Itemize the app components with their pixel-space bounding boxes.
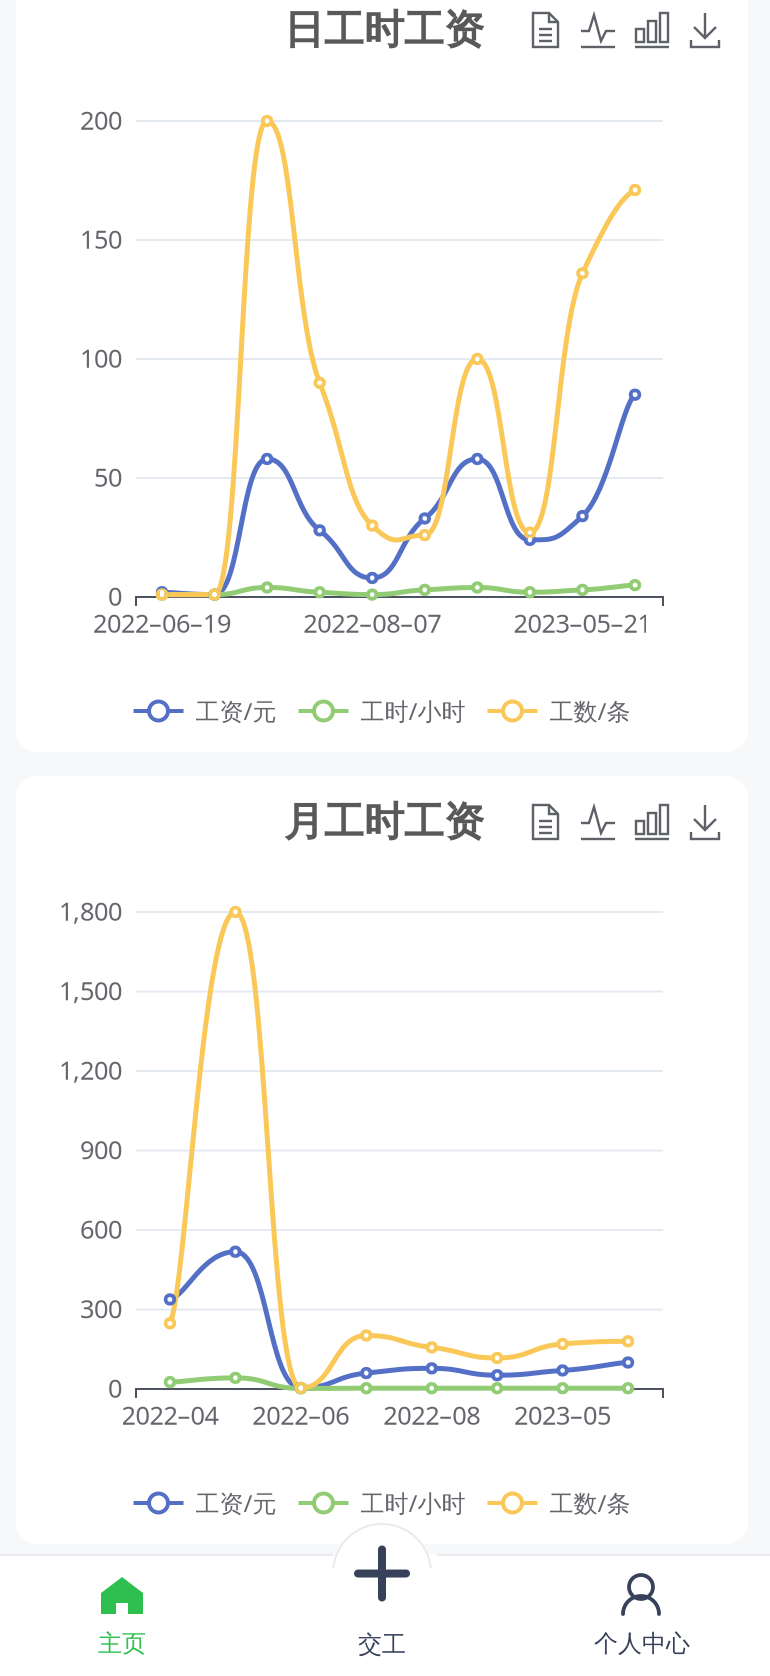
button[interactable]: 下载: [689, 9, 721, 47]
staticText: 工资/元: [195, 1487, 276, 1519]
staticText: 0: [108, 1371, 122, 1405]
button[interactable]: 下载: [689, 801, 721, 839]
staticText: 月工时工资: [284, 797, 484, 846]
staticText: 日工时工资: [284, 5, 484, 54]
staticText: 1,800: [59, 894, 122, 928]
staticText: 工数/条: [549, 695, 630, 727]
staticText: 2022–06–19: [93, 606, 231, 640]
staticText: 工时/小时: [360, 1487, 465, 1519]
staticText: 150: [80, 222, 122, 256]
staticText: 个人中心: [594, 1629, 690, 1658]
staticText: 2023–05: [514, 1398, 611, 1432]
staticText: 300: [80, 1292, 122, 1325]
staticText: 0: [108, 579, 122, 613]
staticText: 2022–08: [383, 1398, 480, 1432]
staticText: 1,200: [59, 1053, 122, 1087]
button[interactable]: 报表: [531, 9, 561, 47]
staticText: 2022–04: [121, 1398, 218, 1432]
staticText: 工资/元: [195, 695, 276, 727]
staticText: 2022–06: [252, 1398, 349, 1432]
button[interactable]: 折线图: [580, 9, 616, 47]
staticText: 主页: [98, 1629, 146, 1658]
button[interactable]: 折线图: [580, 801, 616, 839]
button[interactable]: 柱状图: [635, 801, 670, 839]
staticText: 工时/小时: [360, 695, 465, 727]
button[interactable]: 个人中心: [520, 1518, 764, 1676]
button[interactable]: 报表: [531, 801, 561, 839]
staticText: 交工: [358, 1630, 406, 1659]
staticText: 900: [80, 1133, 122, 1166]
button[interactable]: 交工: [260, 1518, 504, 1676]
staticText: 200: [80, 103, 122, 137]
staticText: 100: [80, 341, 122, 375]
staticText: 2022–08–07: [303, 606, 441, 640]
staticText: 2023–05–21: [513, 606, 651, 640]
button[interactable]: 主页: [0, 1518, 244, 1676]
staticText: 1,500: [59, 974, 122, 1007]
staticText: 工数/条: [549, 1487, 630, 1519]
staticText: 50: [94, 460, 122, 494]
button[interactable]: 柱状图: [635, 9, 670, 47]
staticText: 600: [80, 1212, 122, 1246]
